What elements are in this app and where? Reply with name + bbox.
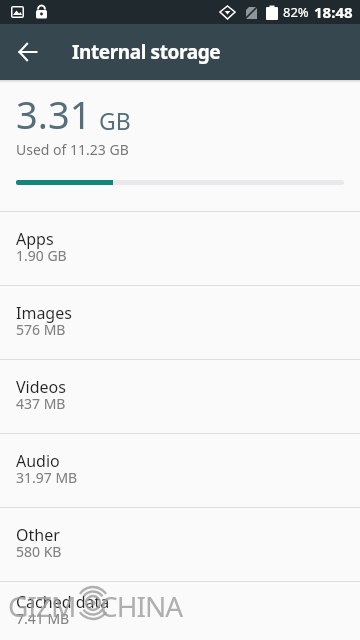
button[interactable]: Images bbox=[0, 286, 360, 359]
staticText: 1.90 GB bbox=[16, 246, 67, 265]
staticText: Cached data bbox=[16, 591, 110, 613]
staticText: Videos bbox=[16, 376, 66, 398]
button[interactable]: Other bbox=[0, 508, 360, 581]
staticText: 576 MB bbox=[16, 320, 66, 339]
button[interactable]: Apps bbox=[0, 212, 360, 285]
staticText: Other bbox=[16, 524, 60, 546]
staticText: Audio bbox=[16, 450, 60, 472]
staticText: 580 KB bbox=[16, 542, 62, 561]
staticText: 437 MB bbox=[16, 394, 66, 413]
button[interactable]: Videos bbox=[0, 360, 360, 433]
button[interactable] bbox=[0, 24, 56, 80]
staticText: Apps bbox=[16, 228, 54, 250]
staticText: 3.31 bbox=[16, 88, 92, 140]
staticText: Internal storage bbox=[72, 39, 221, 65]
button[interactable]: Cached data bbox=[0, 582, 360, 640]
staticText: 18:48 bbox=[314, 2, 353, 22]
staticText: Images bbox=[16, 302, 72, 324]
staticText: 82% bbox=[283, 3, 309, 21]
staticText: GB bbox=[99, 105, 131, 136]
button[interactable]: Audio bbox=[0, 434, 360, 507]
staticText: Used of 11.23 GB bbox=[16, 140, 129, 159]
staticText: GIZM bbox=[8, 587, 76, 625]
staticText: CHINA bbox=[100, 587, 183, 625]
staticText: 7.41 MB bbox=[16, 609, 70, 628]
staticText: 31.97 MB bbox=[16, 468, 78, 487]
